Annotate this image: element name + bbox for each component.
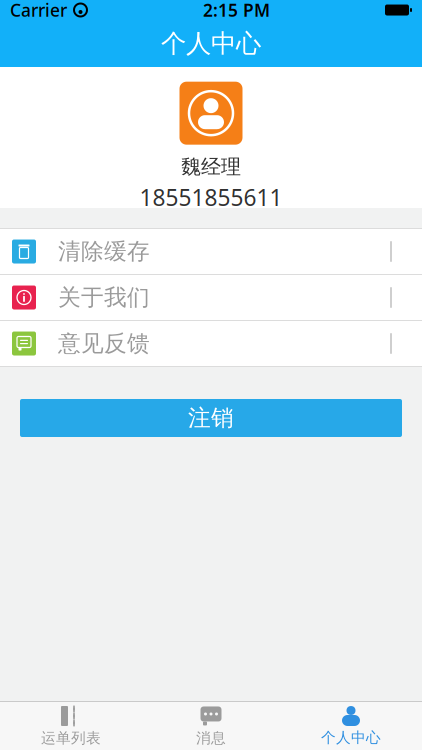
staticText: 意见反馈 [58,330,150,357]
staticText: 个人中心 [161,28,261,59]
staticText: 清除缓存 [58,238,150,265]
staticText: Carrier [10,0,67,21]
staticText: 消息 [196,729,226,747]
staticText: 运单列表 [41,729,101,747]
button[interactable]: 个人中心 [281,702,421,750]
staticText: 个人中心 [321,728,381,746]
staticText: 18551855611 [139,182,282,212]
button[interactable]: 关于我们 [0,275,422,320]
button[interactable]: 清除缓存 [0,229,422,274]
button[interactable]: 注销 [20,399,402,437]
staticText: 注销 [188,404,234,432]
staticText: 关于我们 [58,284,150,311]
staticText: 2:15 PM [203,0,270,21]
button[interactable]: 消息 [141,702,281,750]
button[interactable]: 意见反馈 [0,321,422,366]
button[interactable]: 运单列表 [1,702,141,750]
staticText: 魏经理 [181,155,241,179]
